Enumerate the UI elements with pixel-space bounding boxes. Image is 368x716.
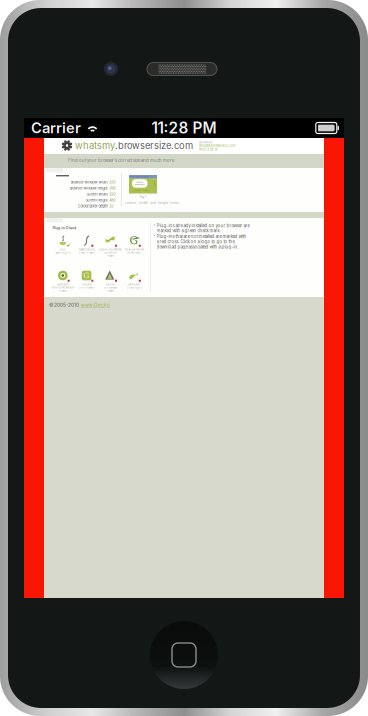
staticText: Browser window width <box>70 180 107 184</box>
staticText: Sun Java Plug-in <box>55 248 71 254</box>
button[interactable]: Microsoft Windows Media Player <box>51 269 75 297</box>
staticText: Adobe SVG Viewer <box>78 283 94 289</box>
button[interactable]: whatsmybrowsersize.com <box>199 144 235 147</box>
staticText: G <box>83 271 89 280</box>
staticText: add bookmark <box>199 141 212 144</box>
staticText: 356 <box>109 186 115 190</box>
button[interactable]: G <box>122 234 146 262</box>
staticText: Adobe Shockwave Player <box>103 283 117 292</box>
staticText: © 2005-2010 <box>49 302 79 308</box>
staticText: Browser window height <box>69 186 107 190</box>
staticText: Screen width <box>86 192 107 196</box>
staticText: fig.1 <box>140 195 146 199</box>
staticText: correct, 'width' and 'height' sizes <box>125 201 179 205</box>
staticText: Screen height <box>85 198 107 202</box>
staticText: Find out your browser's correct size and… <box>68 158 174 163</box>
staticText: 32 <box>109 204 113 208</box>
button[interactable]: Macromedia Flash Player <box>75 234 98 262</box>
staticText: Real Networks RealPlayer <box>124 248 143 254</box>
staticText: Apple Quicktime Quicktime Player <box>99 248 122 257</box>
staticText: .browsersize.com <box>115 140 193 151</box>
button[interactable]: G <box>75 269 98 297</box>
staticText: Microsoft Silverlight <box>126 283 141 289</box>
staticText: whatsmybrowsersize.com <box>199 144 235 147</box>
button[interactable]: Sun Java Plug-in <box>51 234 75 262</box>
staticText: Plug-in Check <box>53 226 77 230</box>
staticText: 320 <box>109 180 115 184</box>
staticText: what is my ip <box>199 147 218 150</box>
button[interactable]: www.Gecko <box>81 302 110 308</box>
staticText: Carrier <box>31 119 81 137</box>
staticText: whatsmy <box>75 140 115 151</box>
staticText: 320 <box>109 192 115 196</box>
staticText: 11:28 PM <box>151 119 216 137</box>
staticText: Macromedia Flash Player <box>78 248 94 254</box>
staticText: 480 <box>109 198 115 202</box>
button[interactable]: Apple Quicktime Quicktime Player <box>98 234 122 262</box>
staticText: www.Gecko <box>81 302 110 308</box>
staticText: G <box>129 234 138 247</box>
button[interactable]: Microsoft Silverlight <box>122 269 146 297</box>
button[interactable]: Adobe Shockwave Player <box>98 269 122 297</box>
staticText: Colour pixel depth <box>77 204 107 208</box>
staticText: Microsoft Windows Media Player <box>52 283 74 292</box>
button[interactable]: what is my ip <box>199 147 218 150</box>
staticText: Plug-ins already installed on your brows… <box>156 223 249 233</box>
staticText: Plug-ins that are not installed are mark… <box>156 234 246 249</box>
